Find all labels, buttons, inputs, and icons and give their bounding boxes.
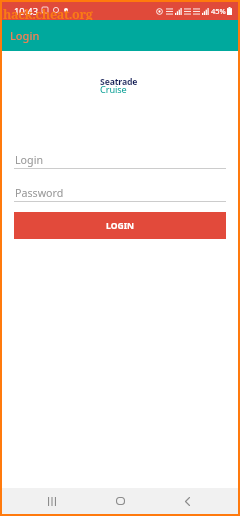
button[interactable]: Home [107, 488, 133, 514]
staticText: 10:43 [14, 5, 39, 18]
staticText: LOGIN [106, 220, 134, 232]
staticText: 45% [211, 6, 226, 16]
staticText: Seatrade [100, 76, 138, 88]
button[interactable]: Login [10, 28, 40, 43]
button[interactable]: Back [174, 488, 200, 514]
staticText: Login [15, 153, 44, 168]
staticText: hack.cheat.org [3, 6, 93, 23]
button[interactable]: Password [14, 186, 226, 202]
button[interactable]: LOGIN [14, 212, 226, 239]
button[interactable]: Recent apps [39, 488, 65, 514]
staticText: Password [15, 186, 64, 201]
button[interactable]: Login [14, 153, 226, 169]
staticText: Cruise [100, 83, 127, 96]
